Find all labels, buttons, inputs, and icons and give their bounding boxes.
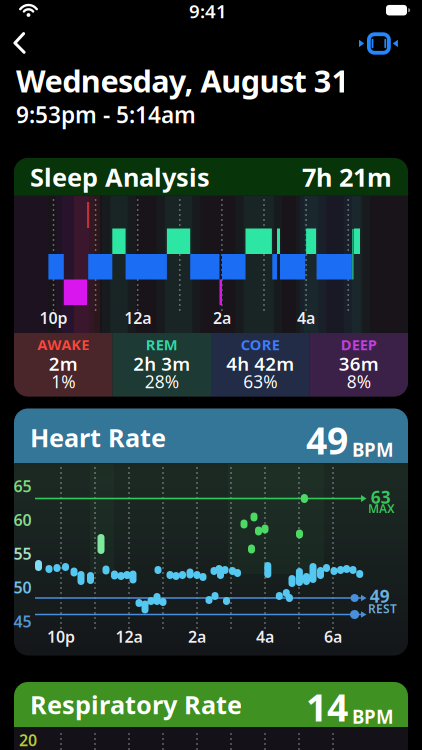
staticText: CORE [241, 335, 280, 354]
staticText: 14 [306, 682, 348, 732]
staticText: 50 [13, 577, 31, 598]
staticText: 65 [13, 475, 31, 497]
staticText: 4a [256, 626, 274, 647]
staticText: 2a [188, 626, 206, 647]
staticText: 8% [347, 370, 371, 393]
button[interactable]: Back [6, 28, 36, 58]
staticText: 1% [51, 370, 75, 393]
staticText: 55 [13, 543, 31, 564]
staticText: 9:53pm - 5:14am [16, 99, 196, 129]
staticText: 4a [297, 307, 315, 328]
staticText: 12a [124, 307, 151, 328]
staticText: Sleep Analysis [30, 160, 210, 194]
staticText: REM [146, 335, 178, 354]
staticText: BPM [352, 437, 394, 462]
staticText: Respiratory Rate [30, 688, 242, 721]
staticText: 45 [13, 611, 31, 632]
staticText: 2m [49, 351, 78, 376]
staticText: 63% [243, 370, 277, 393]
staticText: 63 [371, 485, 391, 508]
staticText: 60 [13, 509, 31, 530]
staticText: 49 [306, 415, 348, 465]
staticText: Heart Rate [30, 421, 166, 454]
staticText: 10p [47, 626, 75, 647]
staticText: DEEP [341, 335, 377, 354]
staticText: 49 [370, 584, 390, 607]
staticText: 2h 3m [133, 351, 190, 376]
staticText: 10p [39, 307, 67, 328]
staticText: 4h 42m [226, 351, 294, 376]
staticText: 12a [115, 626, 142, 647]
staticText: 28% [145, 370, 179, 393]
staticText: 9:41 [189, 0, 227, 23]
staticText: 6a [324, 626, 342, 647]
staticText: 7h 21m [302, 160, 392, 194]
staticText: MAX [368, 500, 395, 516]
staticText: AWAKE [37, 335, 89, 354]
staticText: 20 [19, 729, 37, 750]
staticText: Wednesday, August 31 [16, 60, 349, 101]
staticText: 2a [213, 307, 231, 328]
button[interactable]: Sync with Apple Watch [353, 28, 403, 59]
staticText: REST [368, 600, 397, 616]
staticText: 36m [339, 351, 379, 376]
staticText: BPM [352, 704, 394, 729]
